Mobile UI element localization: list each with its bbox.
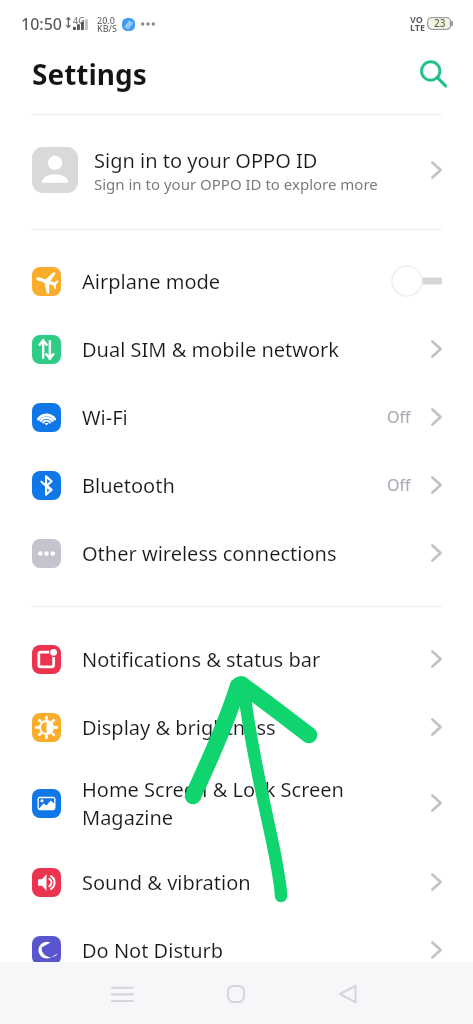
button[interactable]: Notifications & status bar [0, 625, 473, 693]
button[interactable]: Back [318, 962, 378, 1024]
button[interactable]: Sound & vibration [0, 848, 473, 916]
staticText: Wi-Fi [82, 404, 379, 431]
button[interactable]: Sign in to your OPPO ID [0, 113, 473, 227]
staticText: VO LTE [410, 13, 426, 33]
staticText: Dual SIM & mobile network [82, 336, 423, 363]
staticText: Sign in to your OPPO ID to explore more [94, 174, 378, 194]
button[interactable]: Do Not Disturb [0, 916, 473, 984]
staticText: Airplane mode [82, 268, 383, 295]
staticText: Other wireless connections [82, 540, 423, 567]
button[interactable]: Home [206, 962, 266, 1024]
staticText: Settings [32, 55, 147, 93]
staticText: Sound & vibration [82, 869, 423, 896]
staticText: 10:50 [21, 13, 62, 35]
button[interactable]: Recents [92, 962, 152, 1024]
button[interactable]: Home Screen & Lock Screen Magazine [0, 762, 473, 844]
button[interactable]: Airplane mode [0, 247, 473, 315]
staticText: Sign in to your OPPO ID [94, 147, 318, 174]
staticText: Bluetooth [82, 472, 379, 499]
staticText: Display & brightness [82, 714, 423, 741]
staticText: Notifications & status bar [82, 646, 423, 673]
staticText: Off [387, 474, 411, 496]
button[interactable]: Dual SIM & mobile network [0, 315, 473, 383]
staticText: Home Screen & Lock Screen Magazine [82, 776, 423, 831]
button[interactable]: Search [410, 51, 454, 95]
staticText: Do Not Disturb [82, 937, 423, 964]
button[interactable]: Other wireless connections [0, 519, 473, 587]
button[interactable]: Display & brightness [0, 693, 473, 761]
staticText: Off [387, 406, 411, 428]
staticText: 20.0 KB/S [97, 14, 117, 34]
staticText: 23 [434, 16, 446, 30]
button[interactable]: Airplane mode toggle [391, 265, 442, 297]
button[interactable]: Bluetooth [0, 451, 473, 519]
staticText: 4G [73, 14, 85, 26]
button[interactable]: Wi-Fi [0, 383, 473, 451]
